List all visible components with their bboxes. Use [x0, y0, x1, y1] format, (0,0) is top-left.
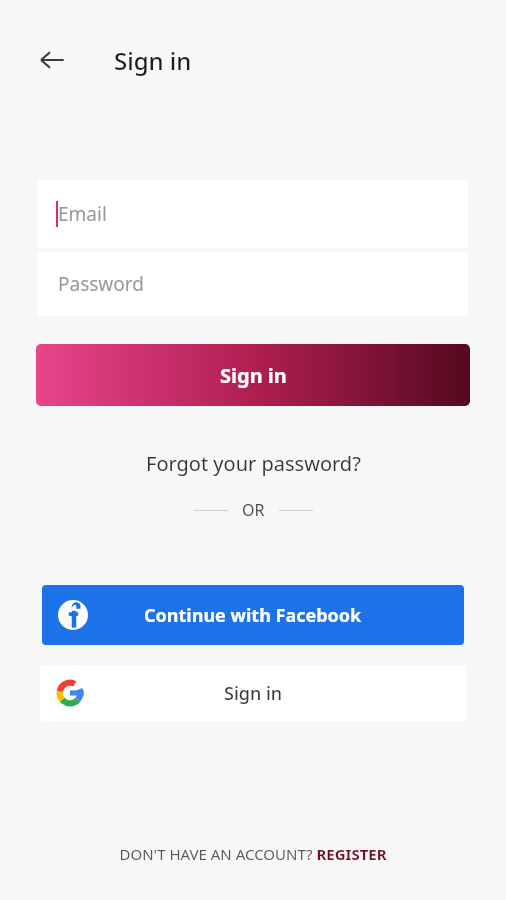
staticText: DON'T HAVE AN ACCOUNT? REGISTER	[119, 844, 387, 864]
staticText: Email	[58, 201, 107, 227]
staticText: Continue with Facebook	[144, 603, 362, 628]
button[interactable]: Email	[38, 180, 468, 248]
staticText: Sign in	[224, 681, 283, 706]
button[interactable]: Password	[38, 252, 468, 316]
button[interactable]: Sign in	[36, 344, 470, 406]
staticText: Sign in	[114, 44, 192, 77]
button[interactable]: Back	[26, 34, 78, 86]
staticText: Sign in	[220, 362, 287, 389]
button[interactable]: Sign in	[40, 665, 466, 721]
staticText: Password	[58, 271, 144, 297]
staticText: Forgot your password?	[146, 450, 361, 477]
button[interactable]: DON'T HAVE AN ACCOUNT? REGISTER	[107, 838, 399, 870]
staticText: OR	[242, 499, 265, 521]
button[interactable]: Continue with Facebook	[42, 585, 464, 645]
button[interactable]: Forgot your password?	[136, 446, 371, 481]
